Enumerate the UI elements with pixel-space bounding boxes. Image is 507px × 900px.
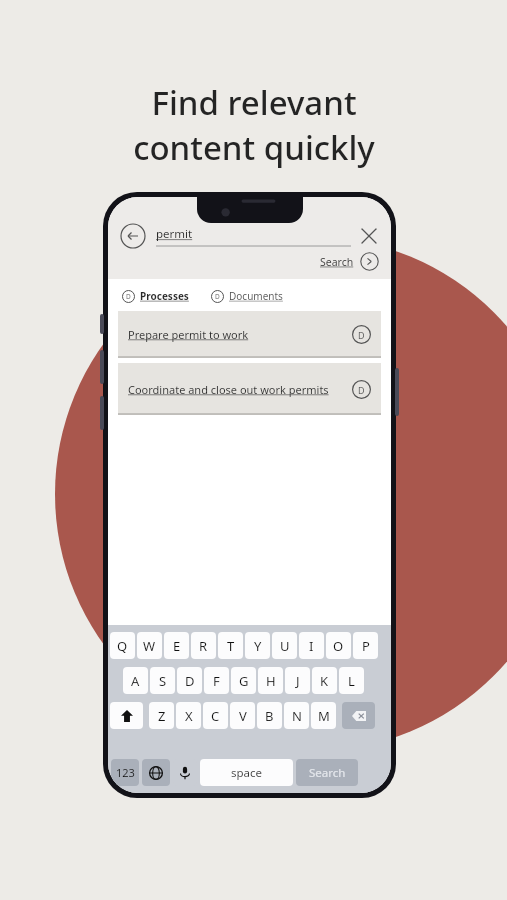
staticText: O <box>333 637 344 655</box>
button[interactable]: P <box>353 632 378 659</box>
staticText: space <box>231 765 263 781</box>
staticText: Search <box>320 255 354 269</box>
staticText: Q <box>117 637 128 655</box>
staticText: U <box>280 637 290 655</box>
button[interactable]: Voice input <box>173 759 197 786</box>
staticText: A <box>131 672 140 690</box>
staticText: F <box>213 672 220 690</box>
staticText: L <box>348 672 355 690</box>
button[interactable]: S <box>150 667 175 694</box>
staticText: E <box>173 637 181 655</box>
button[interactable]: Coordinate and close out work permits <box>118 363 381 415</box>
button[interactable]: I <box>299 632 324 659</box>
button[interactable]: R <box>191 632 216 659</box>
button[interactable]: Y <box>245 632 270 659</box>
staticText: D <box>358 329 365 341</box>
button[interactable]: H <box>258 667 283 694</box>
staticText: Z <box>158 707 166 725</box>
button[interactable]: T <box>218 632 243 659</box>
button[interactable]: L <box>339 667 364 694</box>
button[interactable]: Clear <box>359 226 379 246</box>
button[interactable]: Search <box>296 759 358 786</box>
button[interactable]: V <box>230 702 255 729</box>
button[interactable]: J <box>285 667 310 694</box>
staticText: W <box>143 637 156 655</box>
button[interactable]: Change keyboard <box>142 759 170 786</box>
button[interactable]: G <box>231 667 256 694</box>
button[interactable]: D <box>122 289 189 303</box>
button[interactable]: O <box>326 632 351 659</box>
button[interactable]: C <box>203 702 228 729</box>
staticText: V <box>239 707 247 725</box>
button[interactable]: A <box>123 667 148 694</box>
button[interactable]: Shift <box>110 702 143 729</box>
staticText: P <box>362 637 370 655</box>
staticText: Coordinate and close out work permits <box>128 382 344 397</box>
staticText: Y <box>254 637 262 655</box>
staticText: H <box>266 672 276 690</box>
staticText: Documents <box>229 289 283 303</box>
button[interactable]: 123 <box>111 759 139 786</box>
button[interactable]: K <box>312 667 337 694</box>
staticText: B <box>265 707 274 725</box>
staticText: T <box>227 637 235 655</box>
staticText: N <box>292 707 302 725</box>
button[interactable]: U <box>272 632 297 659</box>
button[interactable]: Back <box>120 223 146 249</box>
staticText: Prepare permit to work <box>128 327 344 342</box>
staticText: K <box>320 672 329 690</box>
staticText: permit <box>156 226 193 242</box>
button[interactable]: X <box>176 702 201 729</box>
button[interactable]: W <box>137 632 162 659</box>
button[interactable]: M <box>311 702 336 729</box>
button[interactable]: Backspace <box>342 702 375 729</box>
button[interactable]: E <box>164 632 189 659</box>
button[interactable]: Prepare permit to work <box>118 311 381 358</box>
button[interactable]: D <box>211 289 283 303</box>
staticText: X <box>185 707 193 725</box>
staticText: Find relevant <box>151 80 357 125</box>
button[interactable]: D <box>177 667 202 694</box>
button[interactable]: Search <box>320 252 379 271</box>
button[interactable]: F <box>204 667 229 694</box>
staticText: D <box>126 292 131 301</box>
button[interactable]: N <box>284 702 309 729</box>
staticText: C <box>211 707 220 725</box>
staticText: D <box>215 292 220 301</box>
button[interactable]: Z <box>149 702 174 729</box>
staticText: Search <box>309 765 346 781</box>
staticText: D <box>358 384 365 396</box>
staticText: G <box>239 672 249 690</box>
staticText: Processes <box>140 289 189 303</box>
staticText: 123 <box>116 765 135 780</box>
staticText: content quickly <box>133 125 375 170</box>
staticText: D <box>185 672 195 690</box>
button[interactable]: Q <box>110 632 135 659</box>
staticText: M <box>318 707 330 725</box>
button[interactable]: space <box>200 759 293 786</box>
staticText: S <box>159 672 167 690</box>
staticText: R <box>199 637 208 655</box>
staticText: I <box>309 637 314 655</box>
staticText: J <box>296 672 300 690</box>
button[interactable]: B <box>257 702 282 729</box>
